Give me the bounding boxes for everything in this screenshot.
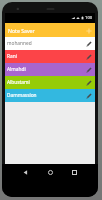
staticText: Albustami	[7, 79, 83, 86]
button[interactable]: Albustami	[5, 76, 95, 89]
button[interactable]: Rani	[5, 50, 95, 63]
button[interactable]: Back	[19, 166, 32, 179]
button[interactable]: Edit note	[83, 77, 95, 89]
button[interactable]: Edit note	[83, 90, 95, 102]
staticText: 100	[85, 15, 93, 21]
button[interactable]: Home	[44, 166, 57, 179]
staticText: Rani	[7, 53, 83, 60]
button[interactable]: mohanned	[5, 37, 95, 50]
staticText: mohanned	[7, 40, 83, 47]
button[interactable]: Edit note	[83, 51, 95, 63]
button[interactable]: Edit note	[83, 64, 95, 76]
staticText: Almahdi	[7, 66, 83, 73]
button[interactable]: Add note	[82, 24, 95, 37]
button[interactable]: Dammassion	[5, 89, 95, 102]
button[interactable]: Edit note	[83, 38, 95, 50]
button[interactable]: Recents	[68, 166, 81, 179]
button[interactable]: Almahdi	[5, 63, 95, 76]
staticText: Note Saver	[8, 27, 35, 34]
staticText: Dammassion	[7, 92, 83, 99]
